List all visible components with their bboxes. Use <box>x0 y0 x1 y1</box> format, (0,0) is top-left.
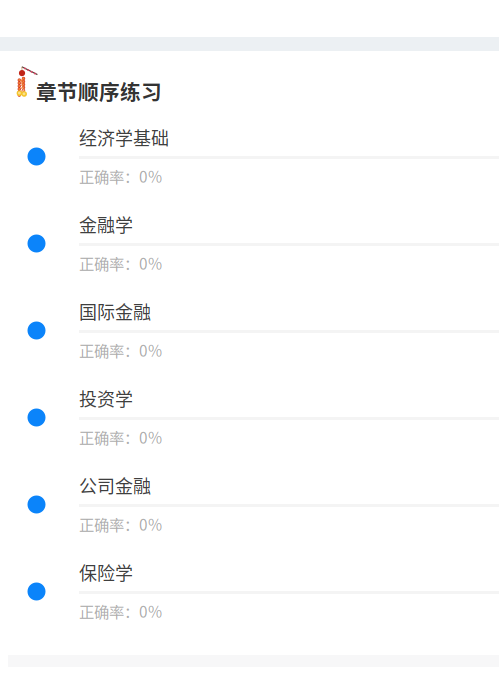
staticText: 投资学 <box>79 385 133 411</box>
button[interactable]: 金融学 <box>0 200 499 287</box>
button[interactable]: 国际金融 <box>0 287 499 374</box>
button[interactable]: 保险学 <box>0 548 499 635</box>
button[interactable]: 经济学基础 <box>0 113 499 200</box>
button[interactable]: 投资学 <box>0 374 499 461</box>
button[interactable]: 公司金融 <box>0 461 499 548</box>
staticText: 正确率：0% <box>79 165 162 187</box>
staticText: 正确率：0% <box>79 513 162 535</box>
staticText: 章节顺序练习 <box>36 76 162 106</box>
staticText: 经济学基础 <box>79 124 169 150</box>
staticText: 正确率：0% <box>79 339 162 361</box>
staticText: 正确率：0% <box>79 600 162 622</box>
staticText: 正确率：0% <box>79 252 162 274</box>
staticText: 国际金融 <box>79 298 151 324</box>
staticText: 金融学 <box>79 211 133 237</box>
staticText: 公司金融 <box>79 472 151 498</box>
staticText: 正确率：0% <box>79 426 162 448</box>
staticText: 保险学 <box>79 559 133 585</box>
